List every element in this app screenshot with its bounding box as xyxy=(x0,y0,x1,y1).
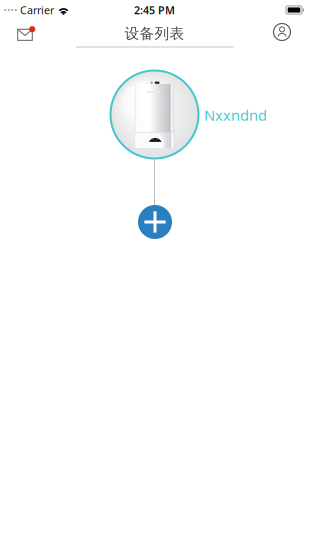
button[interactable]: Messages xyxy=(10,20,40,44)
staticText: Carrier xyxy=(20,3,54,17)
staticText: 2:45 PM xyxy=(134,3,175,17)
button[interactable]: Profile xyxy=(267,20,297,44)
staticText: 设备列表 xyxy=(124,24,184,42)
button[interactable]: Add device xyxy=(138,205,172,239)
staticText: Nxxndnd xyxy=(204,105,267,125)
